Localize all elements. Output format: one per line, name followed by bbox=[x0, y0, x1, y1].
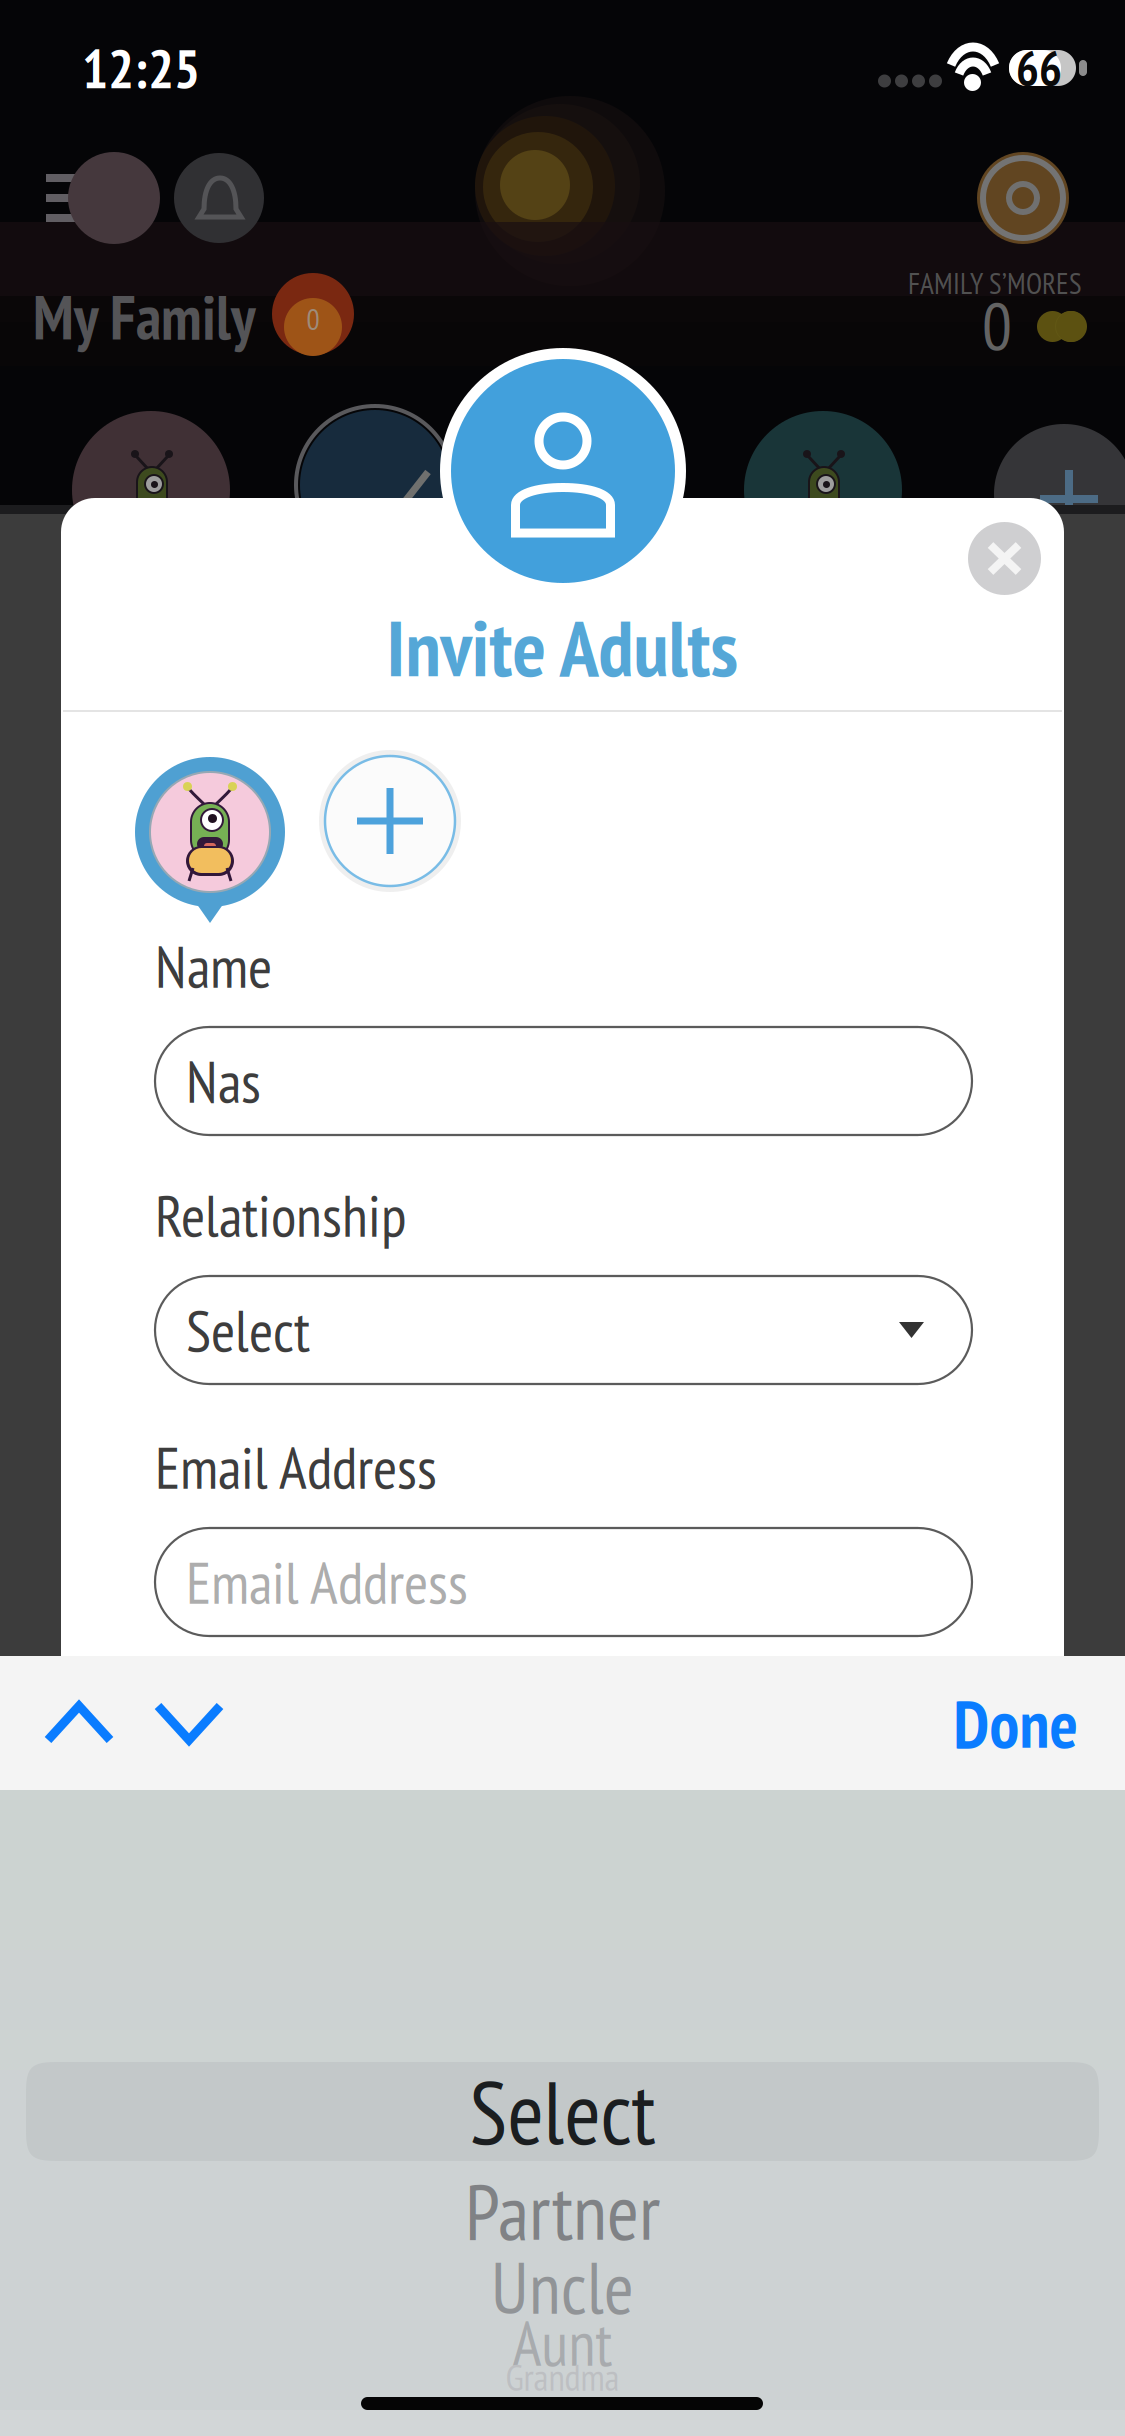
staticText: 0 bbox=[306, 300, 319, 338]
staticText: Select bbox=[186, 1292, 310, 1368]
staticText: 12:25 bbox=[82, 33, 200, 103]
staticText: Grandma bbox=[505, 2353, 619, 2401]
button[interactable]: Adult profile bbox=[440, 348, 686, 594]
staticText: Aunt bbox=[512, 2303, 612, 2383]
button[interactable]: Uncle bbox=[0, 2256, 1125, 2318]
button[interactable]: Select bbox=[155, 1276, 972, 1384]
staticText: Partner bbox=[465, 2161, 660, 2261]
staticText: Invite Adults bbox=[386, 596, 738, 698]
staticText: Uncle bbox=[491, 2240, 634, 2334]
staticText: Email Address bbox=[155, 1429, 437, 1505]
staticText: FAMILY S’MORES bbox=[908, 264, 1082, 302]
staticText: Relationship bbox=[155, 1177, 407, 1253]
button[interactable]: Add member bbox=[319, 750, 461, 892]
button[interactable]: Next field bbox=[134, 1666, 244, 1780]
staticText: Email Address bbox=[186, 1544, 468, 1620]
button[interactable]: Aunt bbox=[0, 2320, 1125, 2366]
button[interactable]: Previous field bbox=[24, 1666, 134, 1780]
staticText: 66 bbox=[1016, 37, 1062, 99]
staticText: My Family bbox=[33, 277, 256, 357]
staticText: Name bbox=[155, 928, 272, 1004]
button[interactable]: Selected family member bbox=[135, 746, 285, 918]
staticText: Done bbox=[953, 1680, 1078, 1766]
button[interactable]: Select bbox=[26, 2062, 1099, 2161]
button[interactable]: Close bbox=[968, 522, 1041, 595]
staticText: 0 bbox=[982, 281, 1012, 367]
button[interactable]: Partner bbox=[0, 2176, 1125, 2246]
button[interactable]: Done bbox=[936, 1666, 1096, 1780]
staticText: Nas bbox=[186, 1043, 261, 1119]
staticText: Select bbox=[469, 2055, 655, 2168]
